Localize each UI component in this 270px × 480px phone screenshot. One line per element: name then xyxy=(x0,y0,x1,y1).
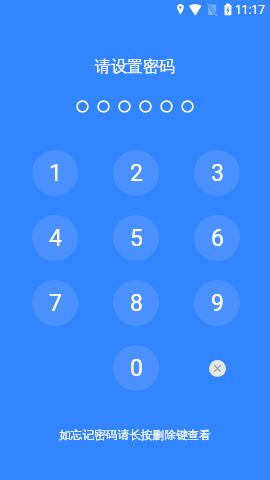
staticText: 4 xyxy=(49,225,62,252)
staticText: 6 xyxy=(211,225,224,252)
staticText: 3 xyxy=(211,160,224,187)
staticText: 9 xyxy=(211,290,224,317)
button[interactable]: 8 xyxy=(113,280,159,326)
staticText: 7 xyxy=(49,290,62,317)
button[interactable]: 4 xyxy=(32,215,78,261)
staticText: 如忘记密码请长按删除键查看 xyxy=(59,428,211,443)
staticText: 8 xyxy=(130,290,143,317)
staticText: 5 xyxy=(130,225,143,252)
button[interactable]: 6 xyxy=(194,215,240,261)
staticText: 2 xyxy=(130,160,143,187)
staticText: 0 xyxy=(130,355,143,382)
button[interactable]: 1 xyxy=(32,150,78,196)
staticText: 1 xyxy=(49,160,62,187)
staticText: 请设置密码 xyxy=(95,57,175,77)
button[interactable]: 9 xyxy=(194,280,240,326)
button[interactable]: 2 xyxy=(113,150,159,196)
button[interactable]: 3 xyxy=(194,150,240,196)
button[interactable]: 7 xyxy=(32,280,78,326)
button[interactable]: 5 xyxy=(113,215,159,261)
staticText: 11:17 xyxy=(235,3,265,17)
button[interactable]: 0 xyxy=(113,345,159,391)
button[interactable]: Delete xyxy=(194,345,240,391)
